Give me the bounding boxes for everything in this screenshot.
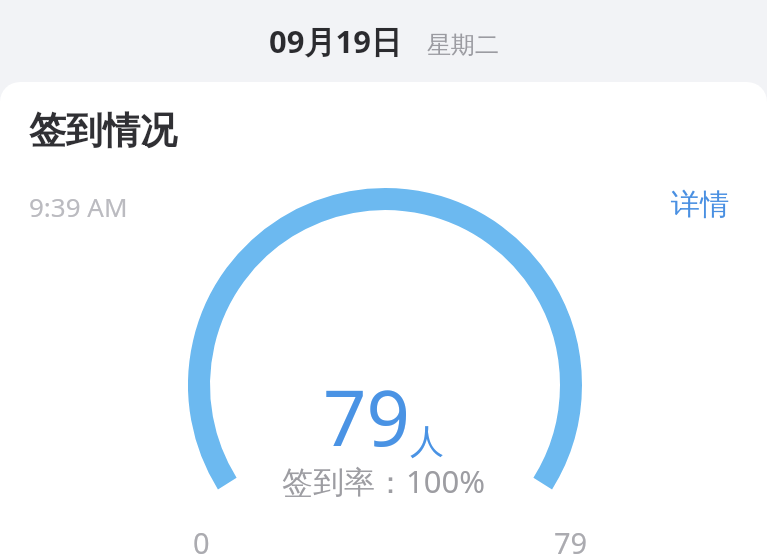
staticText: 0 <box>193 523 210 559</box>
staticText: 09月19日 <box>269 20 402 62</box>
staticText: 79 <box>554 523 588 559</box>
button[interactable]: 详情 <box>641 178 767 231</box>
staticText: 签到率：100% <box>282 460 485 502</box>
staticText: 星期二 <box>427 30 499 60</box>
staticText: 签到情况 <box>29 107 177 154</box>
staticText: 人 <box>410 420 444 463</box>
staticText: 9:39 AM <box>29 189 128 224</box>
staticText: 79 <box>323 365 410 469</box>
staticText: 详情 <box>671 186 729 223</box>
